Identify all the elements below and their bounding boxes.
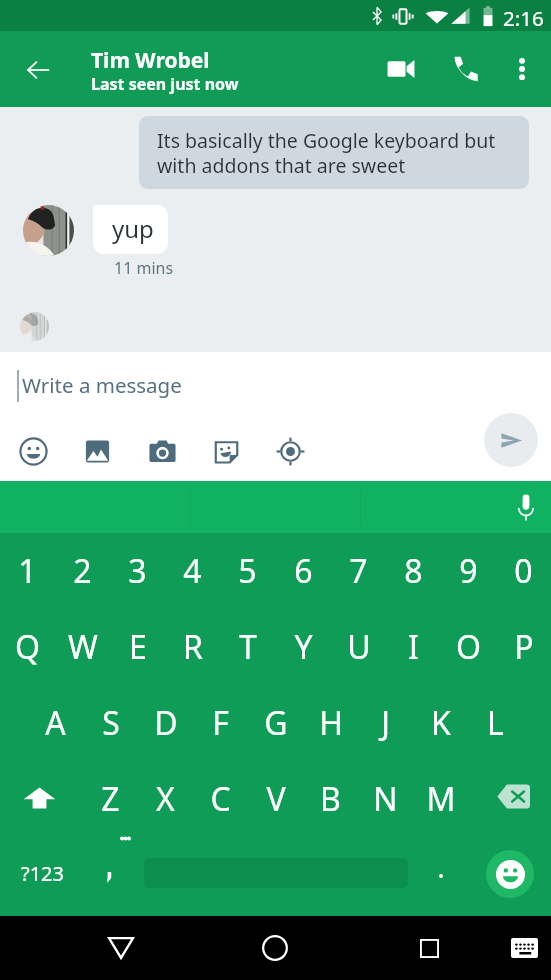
button[interactable]: B (303, 760, 358, 837)
button[interactable]: Camera (141, 430, 183, 472)
staticText: E (129, 625, 147, 669)
staticText: G (264, 701, 288, 745)
button[interactable]: X (138, 760, 193, 837)
staticText: L (487, 701, 504, 745)
button[interactable]: K (413, 684, 468, 761)
button[interactable]: 5 (220, 532, 275, 609)
button[interactable]: Z (83, 760, 138, 837)
staticText: Y (294, 625, 313, 669)
button[interactable]: Backspace (473, 758, 551, 835)
button[interactable]: U (331, 608, 386, 685)
button[interactable]: P (496, 608, 551, 685)
staticText: Z (101, 777, 120, 821)
button[interactable]: Its basically the Google keyboard but wi… (139, 116, 529, 189)
button[interactable]: Q (0, 608, 55, 685)
button[interactable]: 7 (331, 532, 386, 609)
staticText: Its basically the Google keyboard but wi… (157, 127, 496, 179)
button[interactable]: N (358, 760, 413, 837)
button[interactable]: Period (418, 835, 464, 911)
staticText: D (154, 701, 178, 745)
staticText: F (212, 701, 229, 745)
button[interactable]: Recents (399, 916, 459, 980)
button[interactable]: H (303, 684, 358, 761)
button[interactable]: Gallery (76, 430, 118, 472)
button[interactable]: S (83, 684, 138, 761)
staticText: 7 (349, 549, 368, 593)
staticText: W (68, 625, 98, 669)
button[interactable]: Symbols (0, 835, 84, 912)
staticText: 2:16 (503, 4, 544, 32)
button[interactable]: Y (276, 608, 331, 685)
button[interactable]: V (248, 760, 303, 837)
button[interactable]: R (165, 608, 220, 685)
button[interactable]: 3 (110, 532, 165, 609)
staticText: Write a message (22, 371, 182, 399)
button[interactable]: Send (484, 413, 538, 467)
staticText: C (210, 777, 231, 821)
button[interactable]: L (468, 684, 523, 761)
staticText: 2 (73, 549, 92, 593)
button[interactable]: Call (439, 43, 491, 95)
button[interactable]: 2 (55, 532, 110, 609)
button[interactable]: Location (269, 430, 311, 472)
button[interactable]: O (441, 608, 496, 685)
staticText: O (456, 625, 481, 669)
staticText: 4 (183, 549, 202, 593)
button[interactable]: M (413, 760, 468, 837)
button[interactable]: yup (93, 205, 168, 254)
button[interactable]: Back (91, 916, 151, 980)
button[interactable]: D (138, 684, 193, 761)
button[interactable]: 0 (496, 532, 551, 609)
button[interactable]: 8 (386, 532, 441, 609)
button[interactable]: 1 (0, 532, 55, 609)
button[interactable]: Home (245, 916, 305, 980)
staticText: A (45, 701, 66, 745)
button[interactable]: J (358, 684, 413, 761)
staticText: S (102, 701, 120, 745)
staticText: 5 (238, 549, 257, 593)
staticText: M (426, 777, 456, 821)
button[interactable]: Voice input (504, 485, 548, 529)
staticText: X (156, 777, 175, 821)
staticText: 1 (18, 549, 37, 593)
button[interactable]: Emoji (474, 835, 546, 912)
staticText: 3 (128, 549, 147, 593)
button[interactable]: Space (138, 835, 414, 911)
staticText: T (239, 625, 257, 669)
button[interactable]: C (193, 760, 248, 837)
button[interactable]: Sticker (205, 430, 247, 472)
button[interactable]: G (248, 684, 303, 761)
button[interactable]: F (193, 684, 248, 761)
button[interactable]: 6 (276, 532, 331, 609)
staticText: 11 mins (114, 257, 174, 279)
button[interactable]: Switch keyboard (494, 916, 551, 980)
staticText: 0 (514, 549, 533, 593)
staticText: V (266, 777, 286, 821)
staticText: I (408, 625, 419, 669)
button[interactable]: 4 (165, 532, 220, 609)
button[interactable]: Comma (82, 835, 138, 911)
staticText: 6 (294, 549, 313, 593)
staticText: U (347, 625, 371, 669)
button[interactable]: T (220, 608, 275, 685)
staticText: H (319, 701, 343, 745)
staticText: Q (15, 625, 40, 669)
button[interactable]: Video call (375, 43, 427, 95)
button[interactable]: Shift (0, 759, 81, 836)
button[interactable]: W (55, 608, 110, 685)
staticText: R (183, 625, 203, 669)
button[interactable]: More options (496, 43, 548, 95)
staticText: K (431, 701, 451, 745)
staticText: J (381, 701, 390, 745)
staticText: N (373, 777, 398, 821)
staticText: 8 (404, 549, 423, 593)
button[interactable]: I (386, 608, 441, 685)
staticText: Last seen just now (91, 73, 239, 95)
staticText: B (320, 777, 341, 821)
button[interactable]: Back (10, 42, 66, 98)
button[interactable]: E (110, 608, 165, 685)
button[interactable]: A (28, 684, 83, 761)
staticText: 9 (459, 549, 478, 593)
button[interactable]: 9 (441, 532, 496, 609)
button[interactable]: Emoji (12, 430, 54, 472)
